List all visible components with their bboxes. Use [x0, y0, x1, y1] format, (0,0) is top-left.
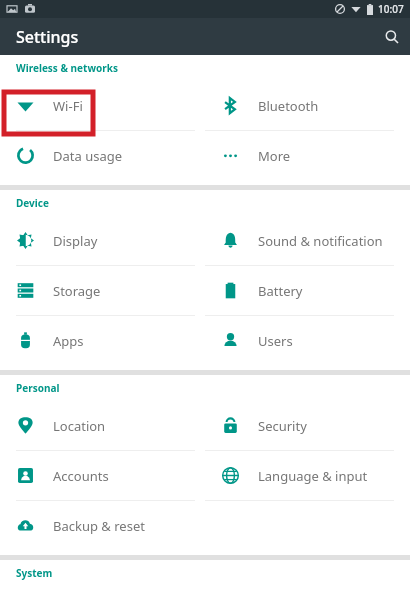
staticText: Users	[258, 332, 293, 350]
staticText: Security	[258, 417, 307, 435]
staticText: Wireless & networks	[16, 61, 118, 75]
staticText: Sound & notification	[258, 232, 383, 250]
staticText: System	[16, 566, 53, 580]
staticText: 10:07	[378, 2, 404, 16]
staticText: Language & input	[258, 467, 368, 485]
staticText: Apps	[53, 332, 84, 350]
staticText: Battery	[258, 282, 303, 300]
button[interactable]: Users	[205, 316, 410, 365]
staticText: Personal	[16, 381, 60, 395]
button[interactable]: Wi-Fi	[0, 81, 205, 130]
button[interactable]: Bluetooth	[205, 81, 410, 130]
button[interactable]: Backup & reset	[0, 501, 205, 550]
staticText: Device	[16, 196, 49, 210]
button[interactable]: Search	[373, 18, 410, 55]
button[interactable]: Language & input	[205, 451, 410, 500]
staticText: Storage	[53, 282, 101, 300]
staticText: Accounts	[53, 467, 109, 485]
staticText: More	[258, 147, 291, 165]
button[interactable]: Battery	[205, 266, 410, 315]
staticText: Wi-Fi	[53, 97, 83, 115]
staticText: Backup & reset	[53, 517, 145, 535]
staticText: Data usage	[53, 147, 123, 165]
staticText: Display	[53, 232, 98, 250]
button[interactable]: Apps	[0, 316, 205, 365]
button[interactable]: Sound & notification	[205, 216, 410, 265]
staticText: Location	[53, 417, 106, 435]
button[interactable]: Location	[0, 401, 205, 450]
button[interactable]: Accounts	[0, 451, 205, 500]
staticText: Settings	[16, 26, 79, 48]
staticText: Bluetooth	[258, 97, 319, 115]
button[interactable]: Data usage	[0, 131, 205, 180]
button[interactable]: More	[205, 131, 410, 180]
button[interactable]: Display	[0, 216, 205, 265]
button[interactable]: Security	[205, 401, 410, 450]
button[interactable]: Storage	[0, 266, 205, 315]
